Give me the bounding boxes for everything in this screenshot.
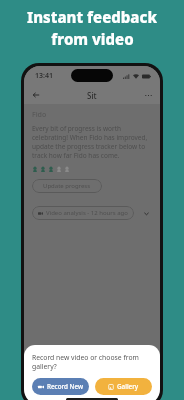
staticText: Every bit of progress is worth celebrati… [32,124,152,160]
button[interactable]: More options [141,88,155,102]
button[interactable]: Update progress [32,179,102,193]
staticText: Instant feedback [27,7,157,27]
staticText: 13:41 [35,71,53,81]
button[interactable]: Back [29,88,43,102]
button[interactable]: Record New [32,378,89,395]
button[interactable]: Expand [140,207,152,219]
staticText: Update progress [43,182,91,190]
staticText: Record new video or choose from gallery? [32,353,152,371]
staticText: from video [51,29,134,49]
button[interactable]: Gallery [95,378,152,395]
staticText: Sit [87,90,97,101]
button[interactable]: Video analysis - 12 hours ago [32,206,134,220]
staticText: Fido [32,110,47,120]
staticText: Gallery [117,382,139,391]
staticText: Video analysis - 12 hours ago [46,209,128,217]
staticText: Record New [47,382,84,391]
